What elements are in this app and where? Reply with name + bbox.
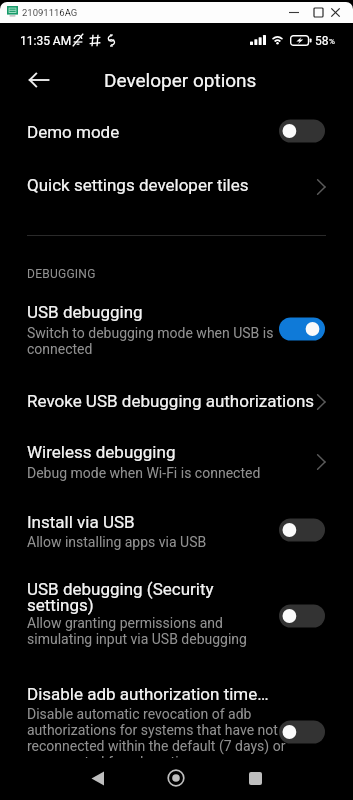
button[interactable]: Minimize: [276, 2, 312, 23]
button[interactable]: [0, 680, 353, 757]
button[interactable]: [0, 505, 353, 563]
button[interactable]: Demo mode: [279, 119, 325, 143]
button[interactable]: [0, 105, 353, 160]
button[interactable]: Maximize: [300, 2, 336, 23]
button[interactable]: Disable adb authorization timeout: [279, 720, 325, 744]
button[interactable]: [0, 380, 353, 430]
staticText: Debug mode when Wi-Fi is connected: [27, 465, 288, 481]
button[interactable]: USB debugging: [279, 317, 325, 341]
staticText: Disable adb authorization time…: [27, 684, 275, 704]
staticText: USB debugging (Security settings): [27, 579, 272, 615]
staticText: Disable automatic revocation of adb auth…: [27, 706, 288, 760]
button[interactable]: [0, 295, 353, 375]
button[interactable]: Back: [77, 758, 117, 798]
staticText: Revoke USB debugging authorizations: [27, 391, 315, 411]
staticText: %: [329, 37, 335, 46]
button[interactable]: Home: [156, 758, 196, 798]
button[interactable]: Navigate up: [15, 55, 62, 105]
button[interactable]: [0, 435, 353, 493]
staticText: DEBUGGING: [27, 267, 96, 281]
button[interactable]: USB debugging security settings: [279, 604, 325, 628]
staticText: Wireless debugging: [27, 442, 277, 462]
button[interactable]: Install via USB: [279, 518, 325, 542]
staticText: 58: [315, 34, 329, 48]
button[interactable]: [0, 160, 353, 215]
staticText: Developer options: [104, 69, 257, 91]
staticText: Demo mode: [27, 122, 277, 142]
staticText: 11:35 AM: [20, 34, 72, 48]
staticText: Quick settings developer tiles: [27, 175, 277, 195]
staticText: 21091116AG: [22, 7, 78, 18]
staticText: Allow granting permissions and simulatin…: [27, 615, 288, 647]
button[interactable]: Recent apps: [235, 758, 275, 798]
button[interactable]: Close: [317, 2, 353, 23]
staticText: Switch to debugging mode when USB is con…: [27, 325, 288, 357]
staticText: Allow installing apps via USB: [27, 534, 288, 550]
button[interactable]: [0, 575, 353, 662]
staticText: USB debugging: [27, 302, 277, 322]
staticText: Install via USB: [27, 512, 277, 532]
